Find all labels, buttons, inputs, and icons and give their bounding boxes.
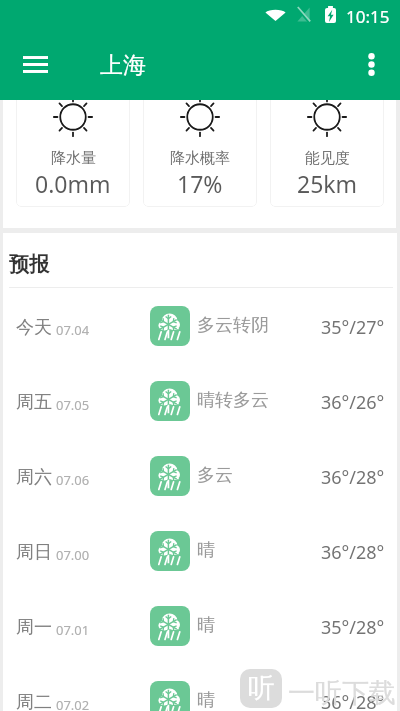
staticText: 多云转阴 bbox=[197, 314, 269, 337]
staticText: 36°/28° bbox=[321, 465, 385, 490]
button[interactable]: 降水概率 bbox=[143, 100, 257, 207]
staticText: 能见度 bbox=[305, 149, 350, 168]
staticText: 25km bbox=[297, 168, 358, 199]
button[interactable]: More options bbox=[348, 41, 394, 87]
staticText: 36°/28° bbox=[321, 540, 385, 565]
staticText: 预报 bbox=[9, 252, 49, 277]
button[interactable]: 周二 bbox=[3, 663, 397, 711]
staticText: 07.01 bbox=[56, 621, 90, 639]
button[interactable]: Menu bbox=[11, 40, 59, 88]
button[interactable]: 降水量 bbox=[16, 100, 130, 207]
staticText: 36°/26° bbox=[321, 390, 385, 415]
staticText: 晴转多云 bbox=[197, 389, 269, 412]
staticText: 17% bbox=[177, 168, 223, 199]
staticText: 上海 bbox=[100, 51, 146, 80]
staticText: 07.04 bbox=[56, 321, 90, 339]
button[interactable]: 周六 bbox=[3, 438, 397, 513]
button[interactable]: 今天 bbox=[3, 288, 397, 363]
button[interactable]: 周日 bbox=[3, 513, 397, 588]
staticText: 周一 bbox=[16, 616, 52, 639]
button[interactable]: 周五 bbox=[3, 363, 397, 438]
staticText: 07.00 bbox=[56, 546, 90, 564]
button[interactable]: 能见度 bbox=[270, 100, 384, 207]
staticText: 36°/28° bbox=[321, 690, 385, 711]
staticText: 07.02 bbox=[56, 696, 90, 711]
staticText: 多云 bbox=[197, 464, 233, 487]
staticText: 听 bbox=[248, 671, 275, 705]
staticText: 10:15 bbox=[346, 5, 390, 28]
staticText: 07.06 bbox=[56, 471, 90, 489]
button[interactable]: 周一 bbox=[3, 588, 397, 663]
staticText: 07.05 bbox=[56, 396, 90, 414]
staticText: 今天 bbox=[16, 316, 52, 339]
staticText: 降水概率 bbox=[170, 149, 230, 168]
staticText: 周二 bbox=[16, 691, 52, 711]
staticText: 周五 bbox=[16, 391, 52, 414]
staticText: 35°/28° bbox=[321, 615, 385, 640]
staticText: 晴 bbox=[197, 614, 215, 637]
staticText: 35°/27° bbox=[321, 315, 385, 340]
staticText: 晴 bbox=[197, 689, 215, 711]
staticText: 晴 bbox=[197, 539, 215, 562]
staticText: 0.0mm bbox=[35, 168, 111, 199]
staticText: 周日 bbox=[16, 541, 52, 564]
staticText: 周六 bbox=[16, 466, 52, 489]
staticText: 降水量 bbox=[51, 149, 96, 168]
staticText: 一听下载 bbox=[288, 676, 396, 710]
